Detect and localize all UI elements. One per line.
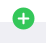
button[interactable]: Add: [12, 7, 34, 29]
